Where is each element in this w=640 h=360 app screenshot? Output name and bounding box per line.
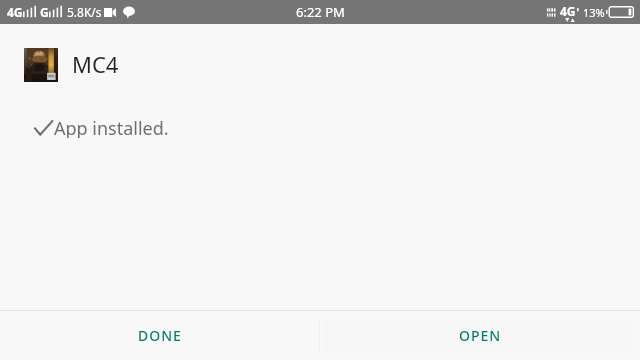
button[interactable]: DONE — [0, 311, 319, 360]
staticText: MC4 — [72, 49, 119, 79]
button[interactable]: OPEN — [320, 311, 640, 360]
other: MC4 app icon — [24, 48, 58, 82]
staticText: 5.8K/s — [67, 4, 102, 20]
staticText: 6:22 PM — [296, 3, 345, 21]
staticText: App installed. — [54, 116, 169, 138]
staticText: DONE — [138, 326, 182, 345]
staticText: 13% — [583, 5, 605, 20]
staticText: 4G — [7, 4, 23, 20]
staticText: G — [40, 4, 49, 20]
staticText: OPEN — [459, 326, 502, 345]
staticText: 4G — [560, 3, 576, 19]
